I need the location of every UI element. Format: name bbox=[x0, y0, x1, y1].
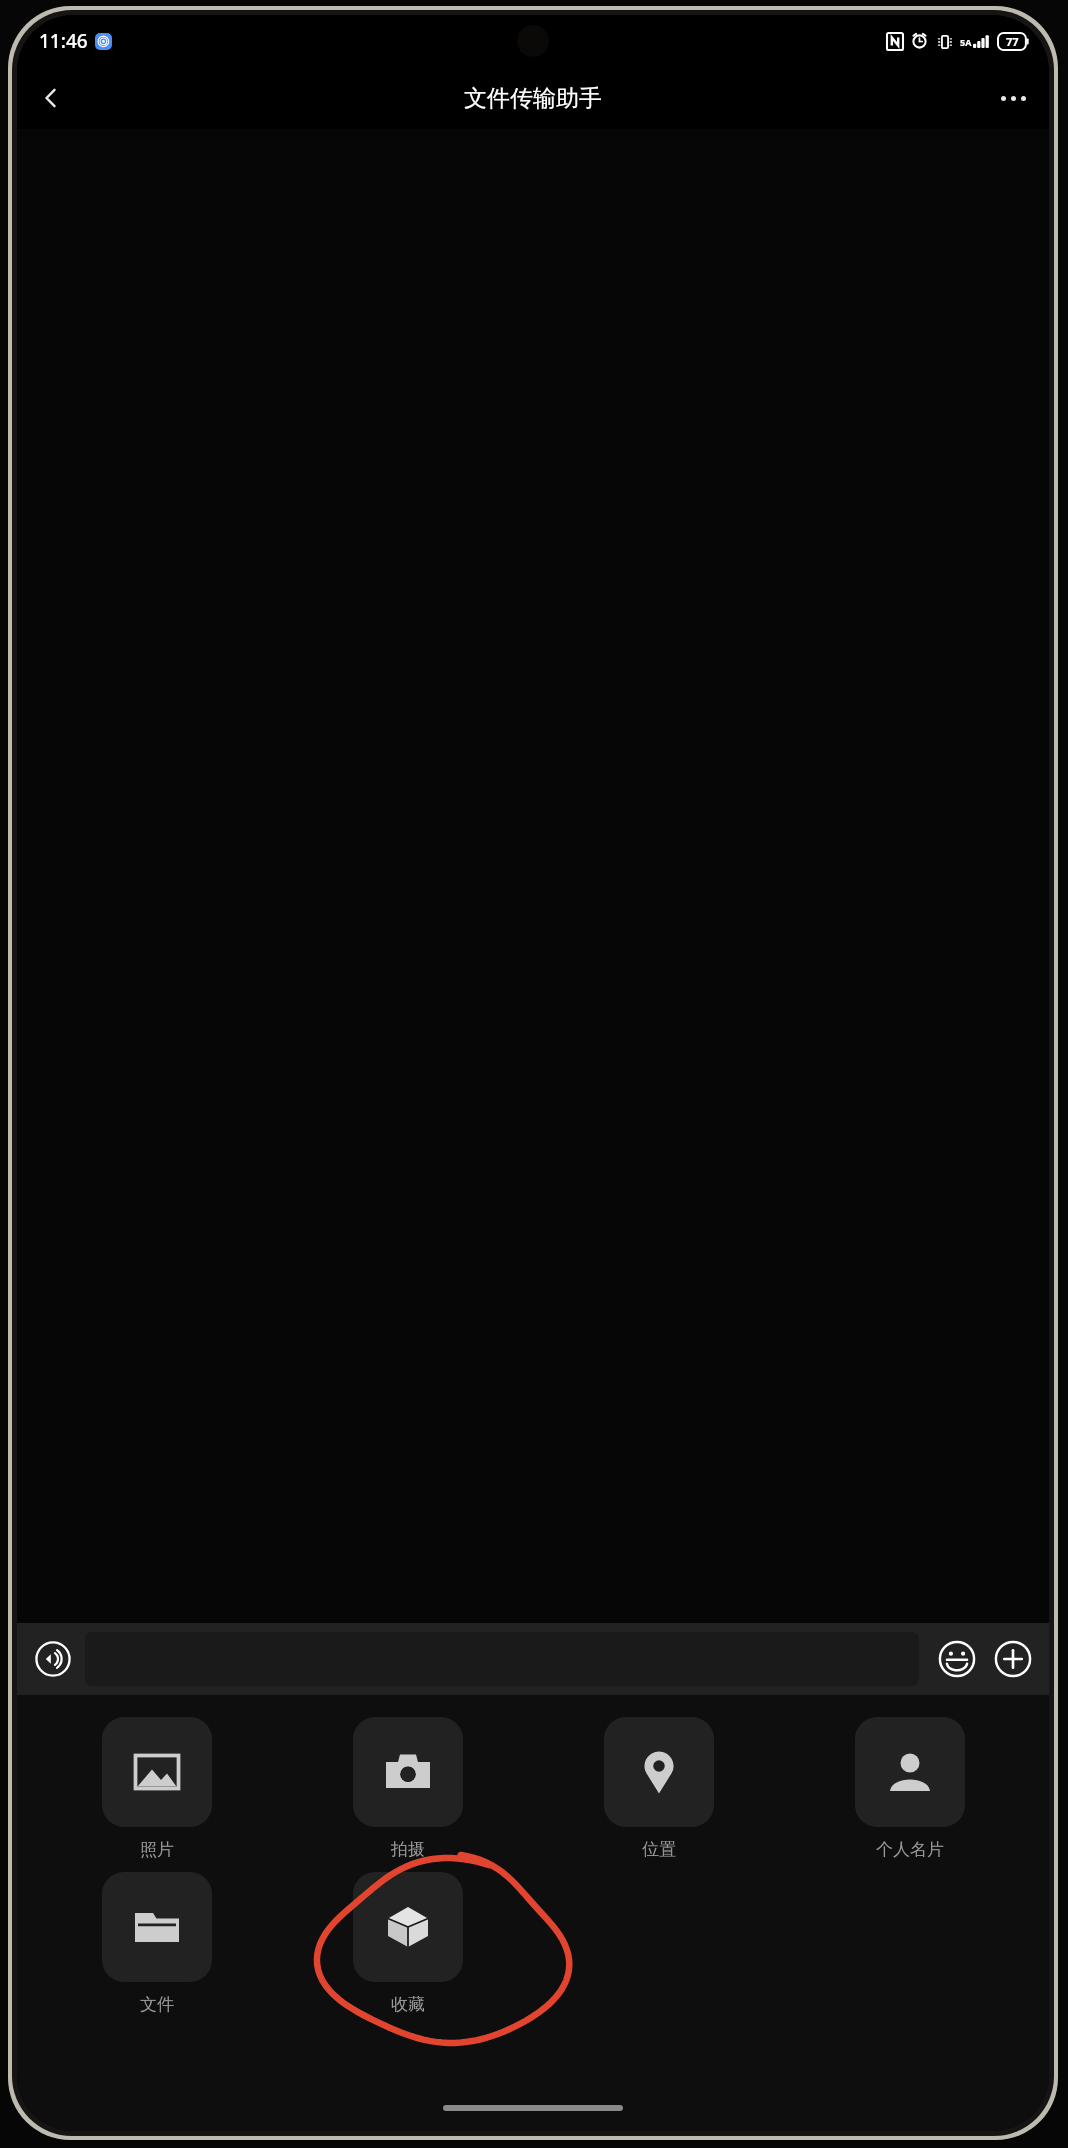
staticText: 5A bbox=[960, 36, 972, 48]
button[interactable]: Back bbox=[23, 70, 79, 126]
staticText: 拍摄 bbox=[391, 1839, 425, 1860]
button[interactable]: More options bbox=[985, 70, 1041, 126]
button[interactable]: 拍摄 bbox=[282, 1717, 533, 1860]
button[interactable]: 收藏 bbox=[282, 1872, 533, 2015]
button[interactable]: Emoji bbox=[931, 1633, 983, 1685]
staticText: 文件传输助手 bbox=[464, 84, 602, 113]
button[interactable]: 个人名片 bbox=[784, 1717, 1035, 1860]
staticText: 位置 bbox=[642, 1839, 676, 1860]
staticText: 77 bbox=[1006, 34, 1019, 49]
staticText: 收藏 bbox=[391, 1994, 425, 2015]
staticText: 个人名片 bbox=[876, 1839, 944, 1860]
button[interactable]: More functions bbox=[987, 1633, 1039, 1685]
button[interactable]: 文件 bbox=[31, 1872, 282, 2015]
button[interactable]: Voice message bbox=[27, 1633, 79, 1685]
staticText: 照片 bbox=[140, 1839, 174, 1860]
staticText: 11:46 bbox=[39, 28, 88, 54]
staticText: 文件 bbox=[140, 1994, 174, 2015]
button[interactable]: 位置 bbox=[533, 1717, 784, 1860]
button[interactable]: 照片 bbox=[31, 1717, 282, 1860]
